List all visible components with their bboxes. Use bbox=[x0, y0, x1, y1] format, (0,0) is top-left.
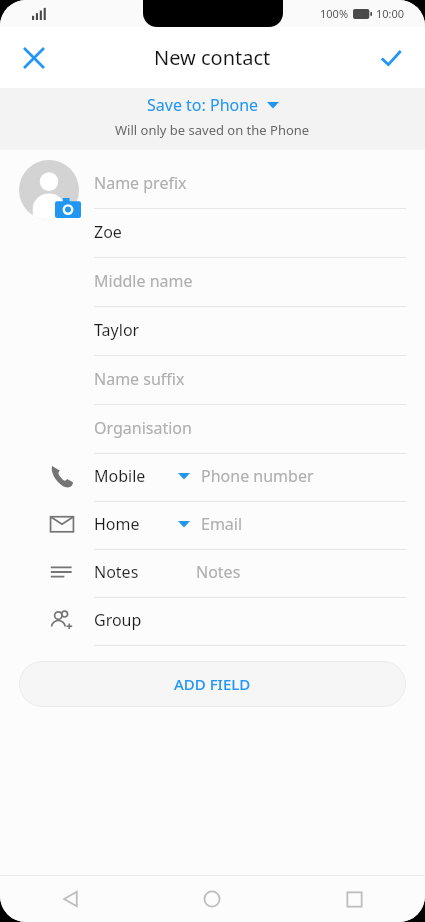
staticText: Phone number bbox=[201, 465, 314, 487]
staticText: Name suffix bbox=[94, 368, 185, 390]
staticText: 100% bbox=[320, 6, 349, 21]
staticText: Mobile bbox=[94, 465, 146, 487]
button[interactable]: Back bbox=[0, 876, 141, 922]
staticText: Notes bbox=[94, 561, 139, 583]
staticText: 10:00 bbox=[376, 6, 405, 21]
staticText: Organisation bbox=[94, 417, 192, 439]
button[interactable]: Save bbox=[367, 34, 415, 82]
button[interactable]: Add photo bbox=[19, 160, 79, 220]
button[interactable]: Close bbox=[10, 34, 58, 82]
button[interactable]: Save to: Phone bbox=[0, 88, 425, 150]
staticText: Taylor bbox=[94, 319, 140, 341]
button[interactable]: Notes bbox=[0, 550, 425, 598]
button[interactable]: Zoe bbox=[0, 209, 425, 258]
staticText: Save to: Phone bbox=[147, 94, 259, 116]
staticText: Will only be saved on the Phone bbox=[115, 121, 310, 139]
staticText: ADD FIELD bbox=[174, 674, 251, 694]
staticText: Name prefix bbox=[94, 172, 187, 194]
staticText: Home bbox=[94, 513, 140, 535]
staticText: Middle name bbox=[94, 270, 193, 292]
staticText: Notes bbox=[196, 561, 241, 583]
staticText: Zoe bbox=[94, 221, 122, 243]
button[interactable]: Home bbox=[0, 502, 425, 550]
button[interactable]: Taylor bbox=[0, 307, 425, 356]
button[interactable]: Name prefix bbox=[0, 160, 425, 209]
button[interactable]: Mobile bbox=[0, 454, 425, 502]
button[interactable]: ADD FIELD bbox=[19, 661, 406, 707]
staticText: New contact bbox=[154, 44, 271, 71]
button[interactable]: Name suffix bbox=[0, 356, 425, 405]
button[interactable]: Group bbox=[0, 598, 425, 646]
staticText: Group bbox=[94, 609, 142, 631]
staticText: Email bbox=[201, 513, 243, 535]
button[interactable]: Home bbox=[141, 876, 283, 922]
button[interactable]: Organisation bbox=[0, 405, 425, 454]
button[interactable]: Middle name bbox=[0, 258, 425, 307]
button[interactable]: Recents bbox=[283, 876, 425, 922]
